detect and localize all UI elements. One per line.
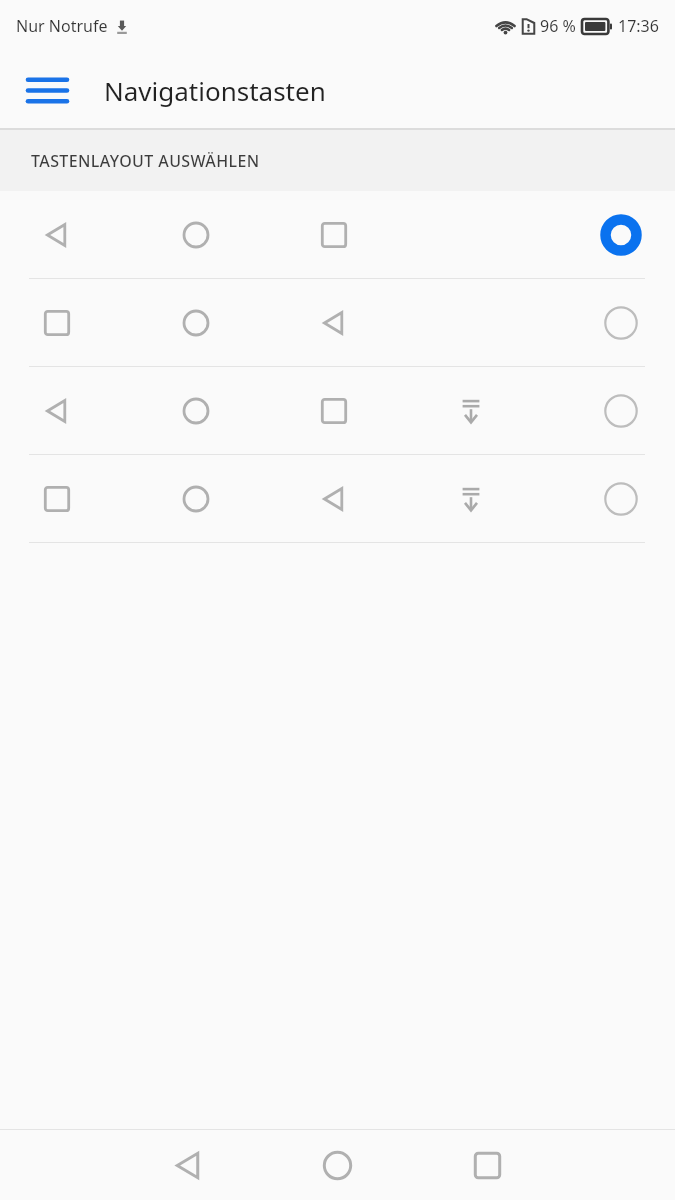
button[interactable]: Back [160,1137,216,1193]
staticText: 17:36 [618,15,659,37]
button[interactable] [0,367,675,454]
staticText: 96 % [540,15,576,37]
staticText: Nur Notrufe [16,15,108,37]
button[interactable]: Home [309,1137,365,1193]
button[interactable]: Recents [459,1137,515,1193]
button[interactable] [0,191,675,278]
staticText: Navigationstasten [104,73,326,108]
button[interactable] [0,455,675,542]
button[interactable] [0,279,675,366]
button[interactable]: Menu [20,63,74,117]
staticText: TASTENLAYOUT AUSWÄHLEN [31,150,260,172]
